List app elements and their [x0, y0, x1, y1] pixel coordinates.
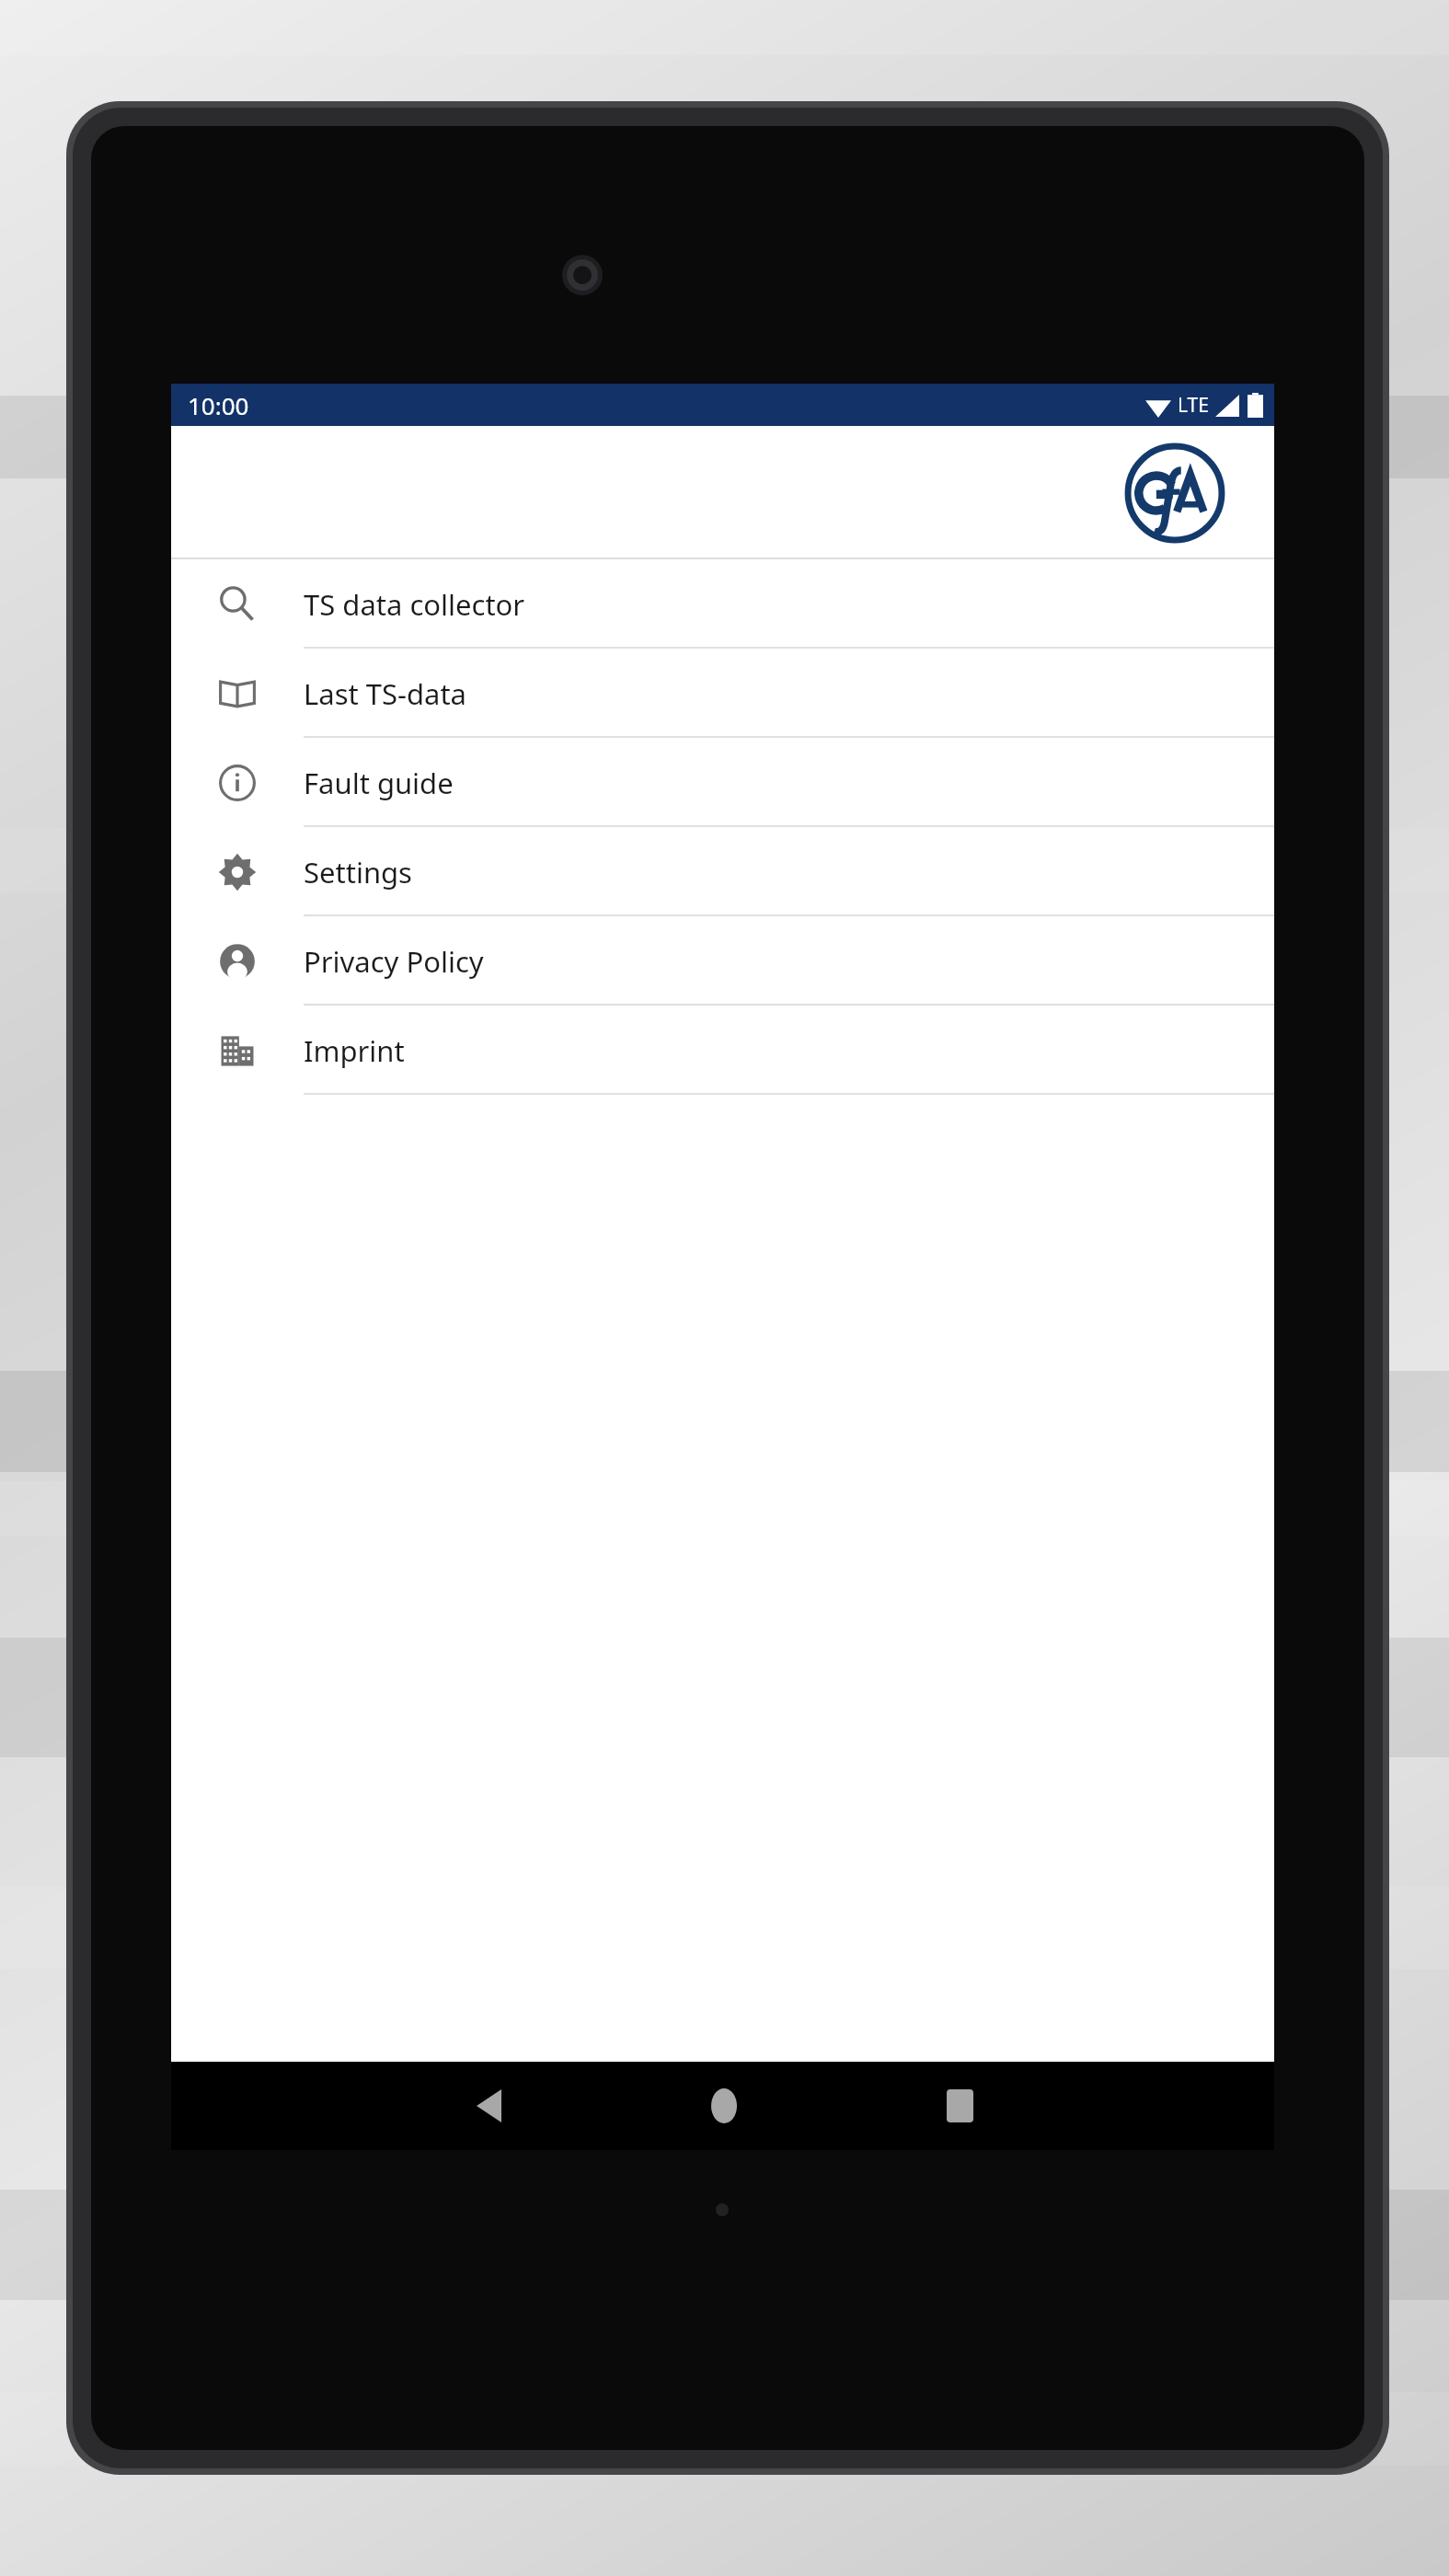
button[interactable]: Last TS-data	[171, 649, 1274, 738]
staticText: Settings	[304, 853, 412, 891]
staticText: Imprint	[304, 1031, 405, 1070]
staticText: Privacy Policy	[304, 942, 484, 981]
staticText: 10:00	[188, 389, 249, 421]
staticText: Last TS-data	[304, 674, 467, 713]
button[interactable]: Fault guide	[171, 738, 1274, 827]
button[interactable]: Recent apps	[909, 2062, 1010, 2150]
other: GfA logo	[1123, 442, 1226, 545]
button[interactable]: Settings	[171, 827, 1274, 916]
staticText: TS data collector	[304, 585, 525, 624]
staticText: Fault guide	[304, 764, 454, 802]
button[interactable]: Privacy Policy	[171, 916, 1274, 1006]
button[interactable]: Imprint	[171, 1006, 1274, 1095]
button[interactable]: Home	[673, 2062, 775, 2150]
button[interactable]: Back	[438, 2062, 539, 2150]
button[interactable]: TS data collector	[171, 559, 1274, 649]
staticText: LTE	[1178, 392, 1209, 419]
